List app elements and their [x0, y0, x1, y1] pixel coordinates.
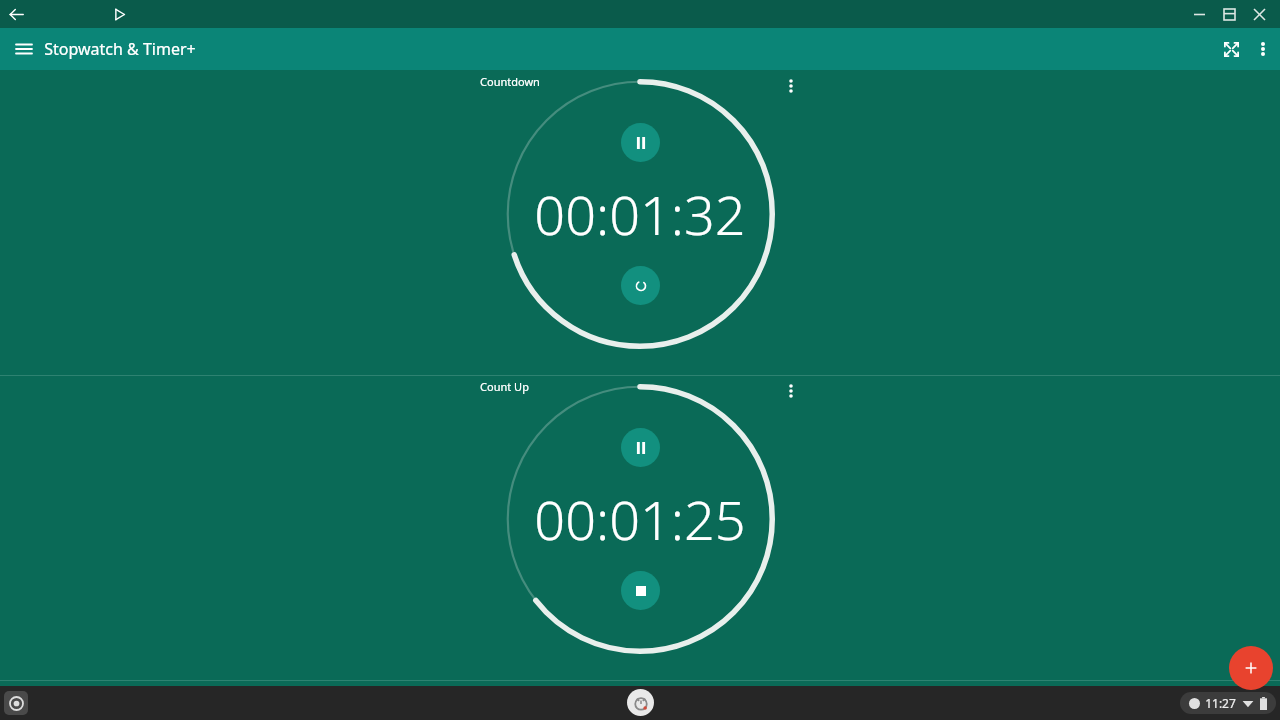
button[interactable]: Close [1244, 0, 1274, 28]
staticText: 00:01:25 [534, 482, 746, 556]
button[interactable]: Menu [10, 35, 38, 63]
button[interactable]: Recents [4, 691, 28, 715]
staticText: 00:01:32 [534, 177, 746, 251]
button[interactable]: Back [4, 2, 28, 26]
button[interactable]: Pause [621, 123, 660, 162]
button[interactable]: Count Up [0, 375, 1280, 680]
button[interactable]: Fullscreen [1214, 32, 1248, 66]
staticText: 11:27 [1205, 695, 1236, 711]
staticText: Count Up [480, 379, 529, 394]
button[interactable]: Timer options [778, 73, 804, 99]
button[interactable]: Minimize [1184, 0, 1214, 28]
button[interactable]: Timer options [778, 378, 804, 404]
button[interactable]: App icon [627, 689, 654, 716]
staticText: Stopwatch & Timer+ [44, 38, 196, 60]
button[interactable]: Reset [621, 266, 660, 305]
button[interactable]: Countdown [0, 70, 1280, 375]
button[interactable]: 11:27 [1189, 695, 1267, 711]
staticText: Countdown [480, 74, 540, 89]
button[interactable]: Play [108, 3, 130, 25]
button[interactable]: Stop [621, 571, 660, 610]
button[interactable]: Add timer [1229, 646, 1273, 690]
button[interactable]: More options [1248, 34, 1278, 64]
button[interactable]: Pause [621, 428, 660, 467]
button[interactable]: Maximize [1214, 0, 1244, 28]
